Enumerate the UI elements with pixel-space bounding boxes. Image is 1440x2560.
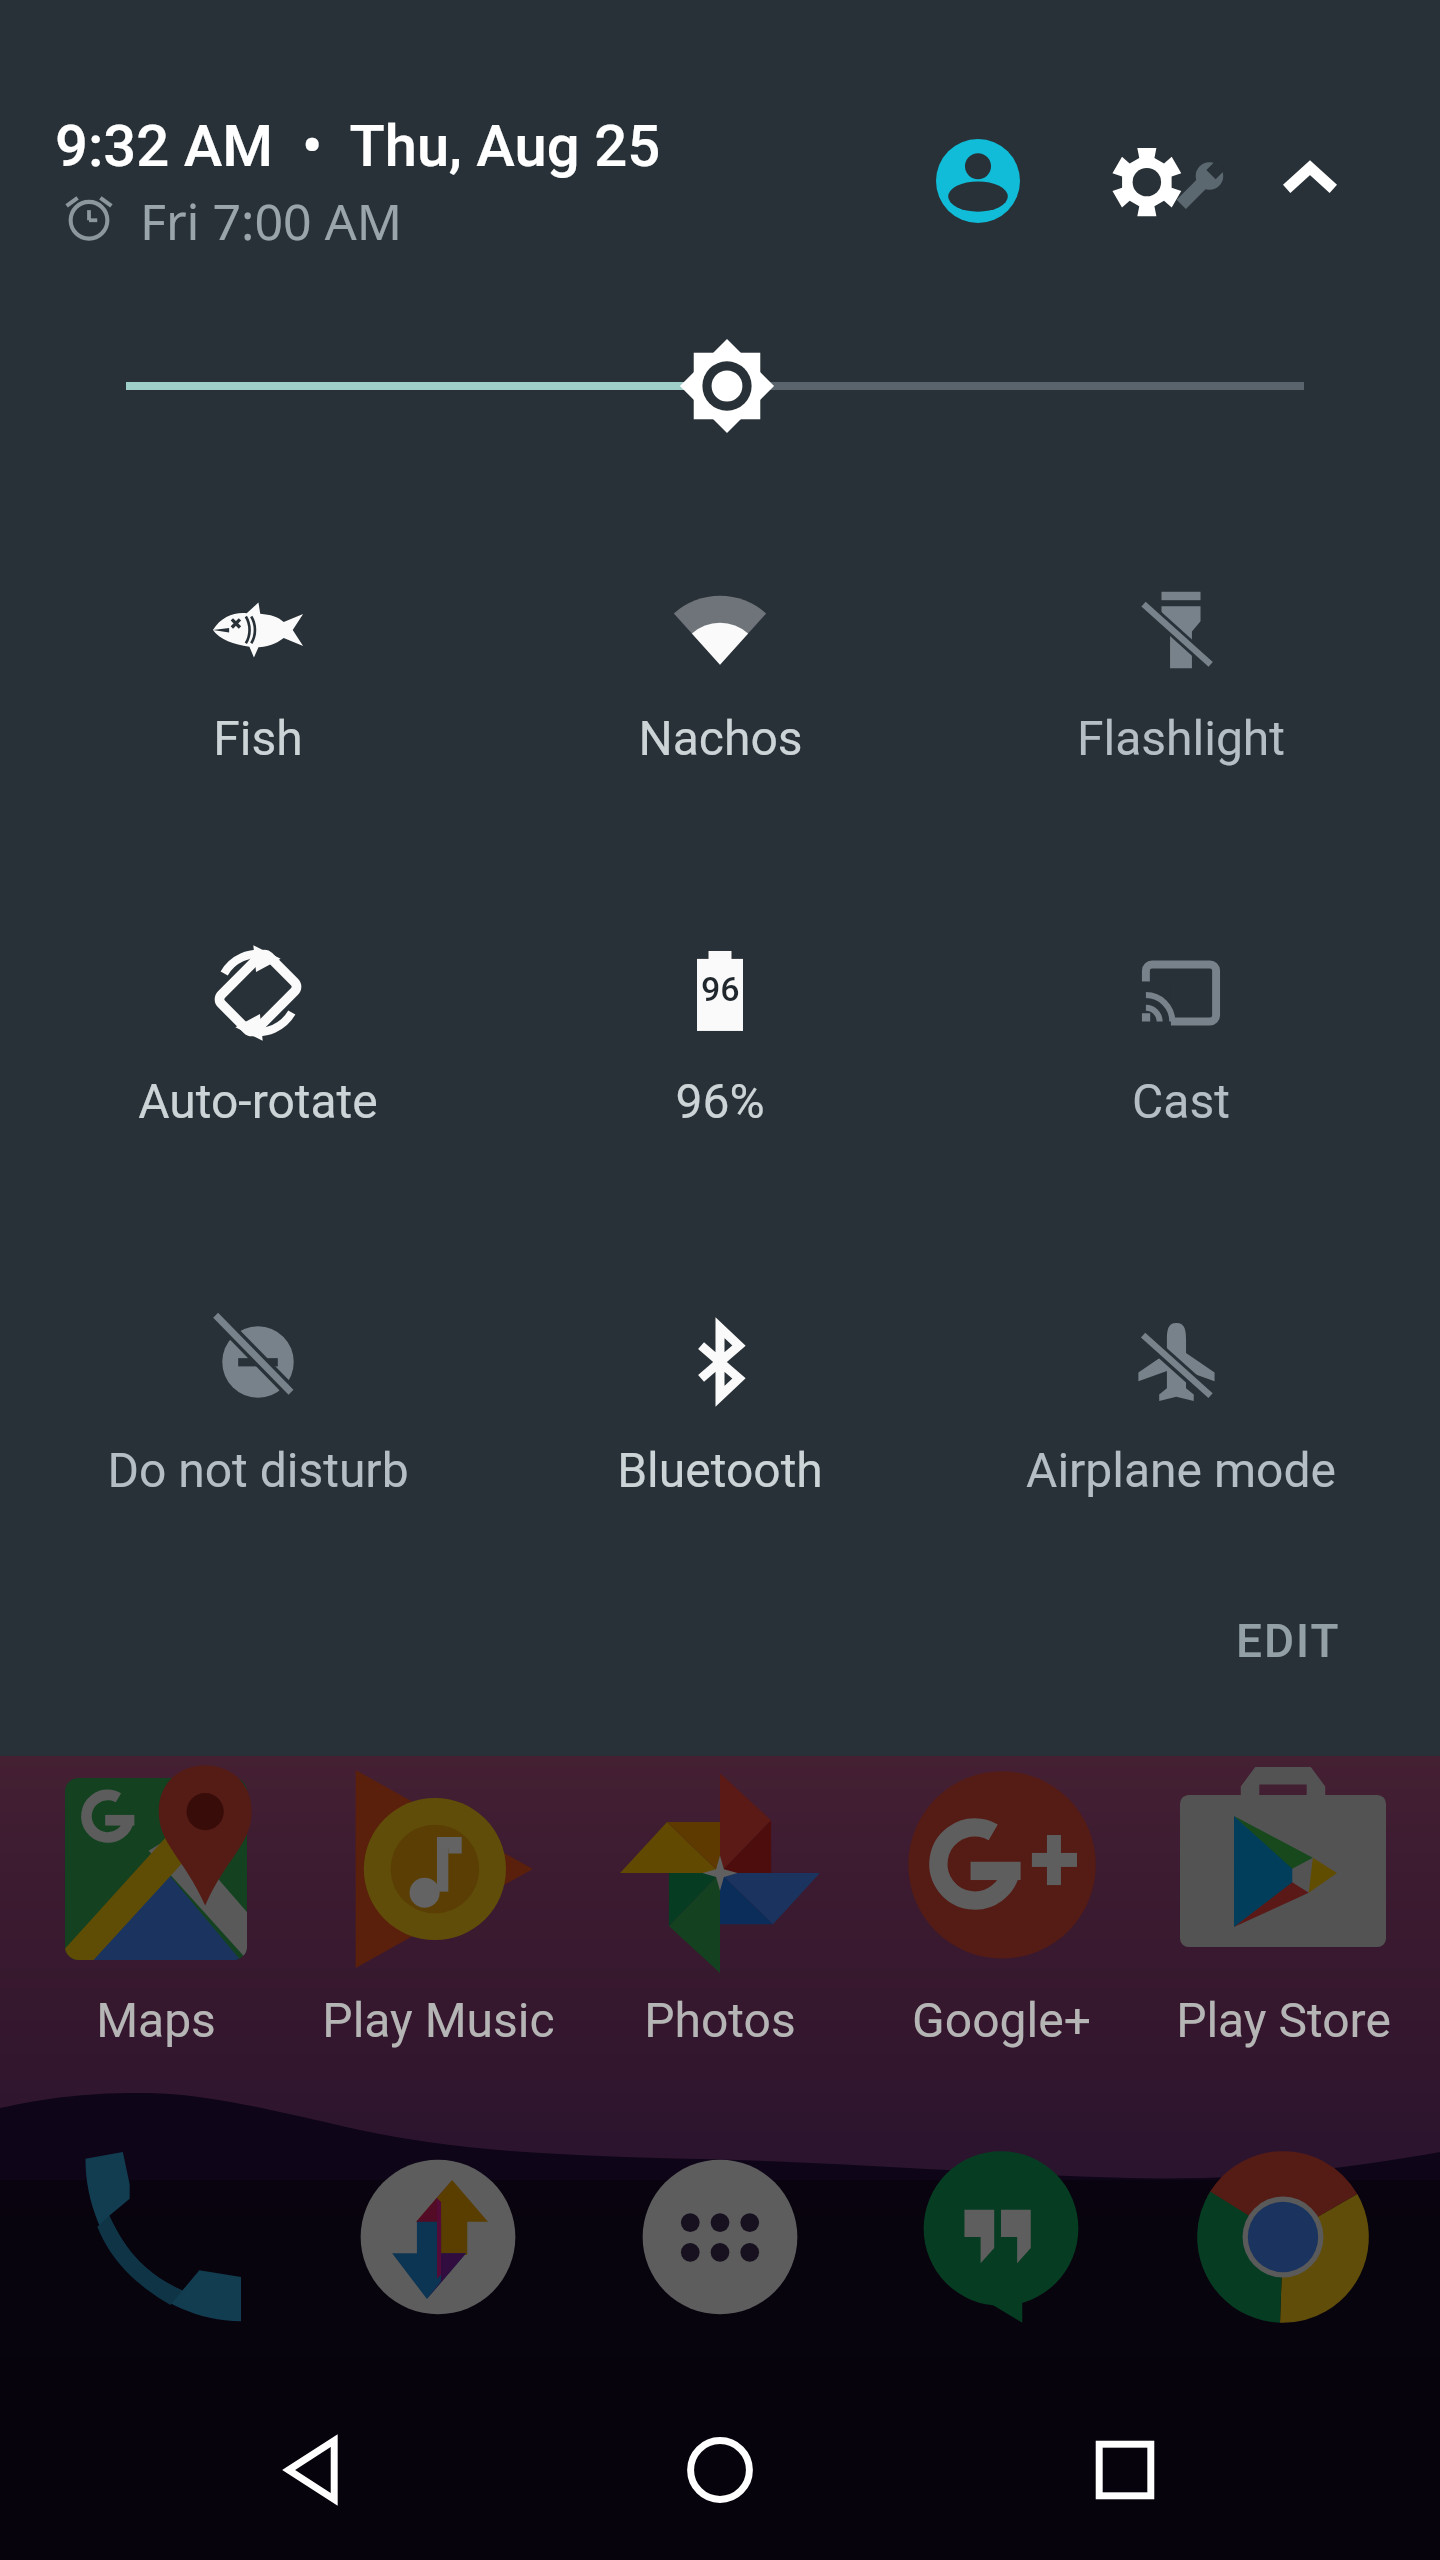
button[interactable]: Bluetooth — [489, 1237, 951, 1527]
staticText: Do not disturb — [107, 1442, 409, 1498]
staticText: Cast — [1132, 1073, 1230, 1129]
staticText: Play Music — [322, 1992, 555, 2048]
button[interactable]: Airplane mode — [950, 1237, 1412, 1527]
button[interactable]: Hangouts — [916, 2152, 1086, 2322]
button[interactable]: 96 — [489, 868, 951, 1158]
button[interactable]: EDIT — [1196, 1588, 1381, 1694]
button[interactable]: Auto-rotate — [27, 868, 489, 1158]
button[interactable]: Photos — [580, 1760, 860, 2050]
button[interactable]: Cast — [950, 868, 1412, 1158]
button[interactable]: All apps — [635, 2152, 805, 2322]
button[interactable]: User account — [936, 139, 1020, 223]
staticText: 96% — [675, 1073, 765, 1129]
button[interactable]: Play Store — [1143, 1760, 1423, 2050]
button[interactable]: Flashlight — [950, 505, 1412, 795]
staticText: Play Store — [1176, 1992, 1391, 2048]
staticText: 96 — [701, 969, 740, 1009]
button[interactable]: Back — [255, 2410, 375, 2530]
button[interactable]: Home — [660, 2410, 780, 2530]
button[interactable]: Phone — [71, 2152, 241, 2322]
staticText: Nachos — [638, 710, 803, 766]
staticText: Flashlight — [1077, 710, 1285, 766]
button[interactable]: Maps — [16, 1760, 296, 2050]
button[interactable]: Play Music — [298, 1760, 578, 2050]
button[interactable]: Android Switch — [353, 2152, 523, 2322]
button[interactable]: Do not disturb — [27, 1237, 489, 1527]
button[interactable]: Nachos — [489, 505, 951, 795]
button[interactable]: Google+ — [861, 1760, 1141, 2050]
staticText: Auto-rotate — [138, 1073, 378, 1129]
staticText: Fish — [213, 710, 303, 766]
staticText: Photos — [644, 1992, 796, 2048]
staticText: Maps — [96, 1992, 216, 2048]
button[interactable]: Recent apps — [1065, 2410, 1185, 2530]
button[interactable]: Fish — [27, 505, 489, 795]
button[interactable]: Brightness — [0, 326, 1440, 446]
button[interactable]: Chrome — [1198, 2152, 1368, 2322]
button[interactable]: Settings — [1099, 114, 1244, 259]
button[interactable]: Collapse quick settings — [1266, 133, 1354, 221]
staticText: 9:32 AM • Thu, Aug 25 — [55, 112, 661, 180]
staticText: Bluetooth — [617, 1442, 823, 1498]
staticText: Fri 7:00 AM — [140, 187, 402, 255]
staticText: EDIT — [1236, 1614, 1341, 1668]
staticText: Google+ — [912, 1992, 1091, 2048]
staticText: Airplane mode — [1026, 1442, 1336, 1498]
